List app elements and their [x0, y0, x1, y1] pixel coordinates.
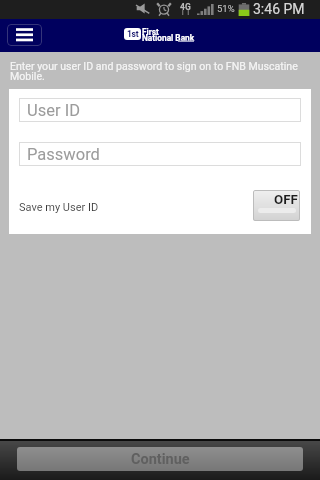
button[interactable]: Open navigation menu — [7, 24, 42, 46]
staticText: Password — [27, 145, 100, 164]
staticText: First — [142, 27, 159, 37]
staticText: User ID — [27, 101, 80, 120]
staticText: Enter your user ID and password to sign … — [10, 60, 308, 83]
button[interactable]: Password — [19, 142, 301, 166]
staticText: Continue — [131, 451, 190, 468]
staticText: 51% — [217, 3, 235, 14]
button[interactable]: Save my User ID switch, off — [253, 190, 300, 221]
staticText: Save my User ID — [19, 201, 99, 214]
staticText: 3:46 PM — [253, 1, 305, 17]
staticText: OFF — [274, 192, 298, 208]
button[interactable]: User ID — [19, 98, 301, 122]
button[interactable]: Continue — [17, 447, 303, 471]
staticText: National Bank — [142, 33, 195, 43]
staticText: 1st — [127, 29, 139, 39]
staticText: 4G — [180, 2, 191, 12]
